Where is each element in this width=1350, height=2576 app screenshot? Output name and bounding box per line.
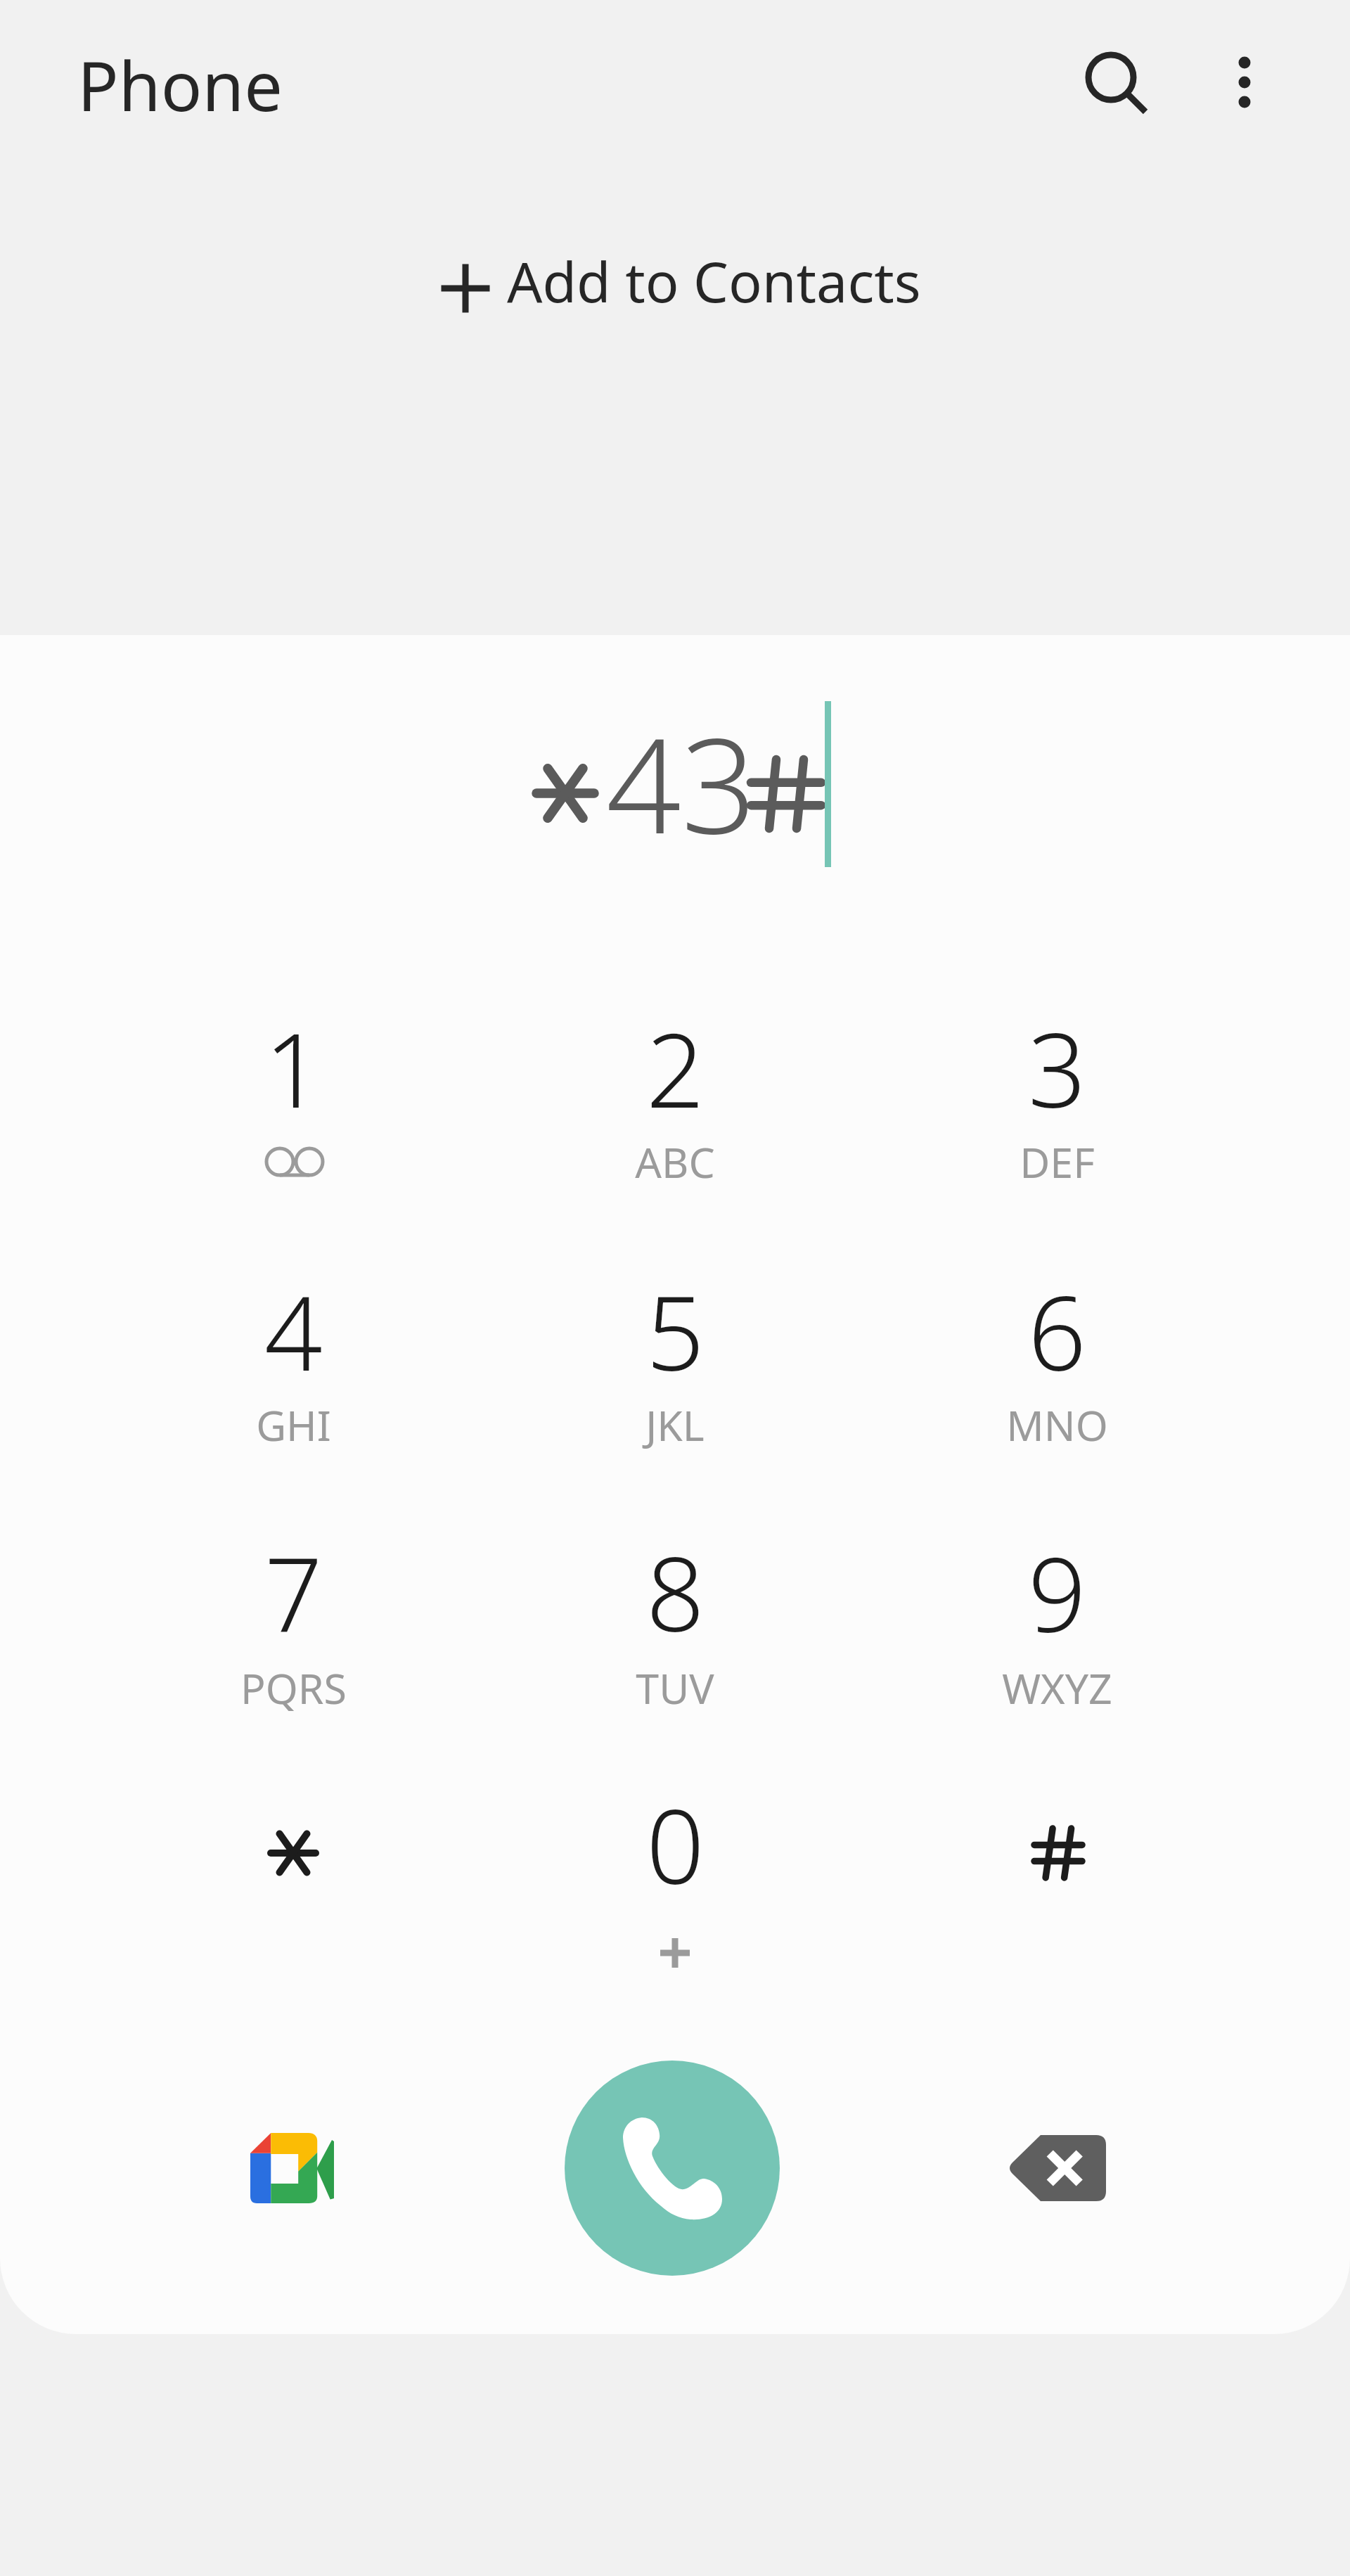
staticText: TUV (636, 1660, 714, 1716)
button[interactable]: 0 plus (485, 1715, 865, 1973)
button[interactable]: pound (867, 1715, 1247, 1973)
staticText: 3 (1028, 999, 1086, 1137)
button[interactable]: 6 MNO (867, 1201, 1247, 1460)
staticText: Add to Contacts (507, 243, 921, 319)
staticText: 2 (646, 999, 705, 1137)
staticText: 8 (646, 1523, 705, 1661)
button[interactable]: star (103, 1715, 483, 1973)
staticText: 7 (264, 1523, 323, 1661)
button[interactable]: 2 ABC (485, 938, 865, 1197)
button[interactable]: Search (1048, 14, 1174, 141)
button[interactable]: 8 TUV (485, 1462, 865, 1721)
button[interactable]: More options (1181, 19, 1308, 146)
staticText: DEF (1020, 1134, 1095, 1190)
staticText: 5 (646, 1262, 705, 1400)
staticText: 6 (1028, 1262, 1086, 1400)
button[interactable]: 5 JKL (485, 1201, 865, 1460)
button[interactable]: 3 DEF (867, 938, 1247, 1197)
staticText: 9 (1028, 1523, 1086, 1661)
staticText: 43 (606, 693, 757, 872)
button[interactable]: Add to Contacts (422, 246, 928, 331)
button[interactable]: 4 GHI (103, 1201, 483, 1460)
staticText: 0 (646, 1775, 705, 1914)
staticText: WXYZ (1002, 1660, 1112, 1716)
button[interactable]: Call (565, 2061, 780, 2276)
staticText: 4 (264, 1262, 323, 1400)
staticText: PQRS (240, 1660, 347, 1716)
button[interactable]: 1 voicemail (103, 938, 483, 1197)
staticText: GHI (256, 1397, 331, 1453)
button[interactable]: 9 WXYZ (867, 1462, 1247, 1721)
button[interactable]: Video call (221, 2098, 362, 2238)
staticText: JKL (645, 1397, 705, 1453)
button[interactable]: 7 PQRS (103, 1462, 483, 1721)
staticText: MNO (1006, 1397, 1108, 1453)
staticText: Phone (77, 38, 283, 131)
button[interactable]: Backspace (986, 2098, 1126, 2238)
staticText: 1 (264, 999, 323, 1137)
staticText: ABC (635, 1134, 715, 1190)
